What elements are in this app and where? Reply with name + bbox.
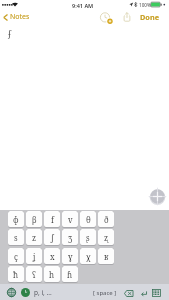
button[interactable]: ħ <box>8 266 24 282</box>
button[interactable]: θ <box>80 211 96 227</box>
staticText: χ <box>86 251 91 262</box>
staticText: ɦ <box>67 269 73 280</box>
staticText: ɣ <box>68 251 73 262</box>
staticText: ʃ <box>51 232 54 243</box>
button[interactable]: Globe <box>7 288 16 297</box>
staticText: 100% <box>139 2 151 8</box>
button[interactable]: β <box>26 211 42 227</box>
staticText: h <box>49 269 55 280</box>
button[interactable]: Language <box>21 288 30 297</box>
button[interactable]: h <box>44 266 60 282</box>
staticText: β <box>32 214 37 225</box>
button[interactable]: ʒ <box>62 229 78 245</box>
button[interactable]: f <box>44 211 60 227</box>
button[interactable]: Share <box>121 11 133 22</box>
staticText: ʐ <box>104 232 109 243</box>
button[interactable]: ʁ <box>98 248 114 264</box>
staticText: Notes <box>10 12 30 22</box>
button[interactable]: ç <box>8 248 24 264</box>
button[interactable]: χ <box>80 248 96 264</box>
button[interactable]: Return <box>141 290 147 297</box>
button[interactable]: ɦ <box>62 266 78 282</box>
staticText: ʂ <box>86 232 90 243</box>
button[interactable]: ɣ <box>62 248 78 264</box>
staticText: [ space ] <box>93 289 117 297</box>
button[interactable]: Backspace <box>124 290 133 297</box>
staticText: ʒ <box>68 232 73 243</box>
staticText: ʄ <box>8 27 11 39</box>
staticText: ʝ <box>33 251 36 262</box>
staticText: ʕ <box>32 269 36 280</box>
button[interactable]: ɸ <box>8 211 24 227</box>
button[interactable]: Switch keyboard <box>152 289 161 297</box>
button[interactable]: ʕ <box>26 266 42 282</box>
button[interactable]: ʐ <box>98 229 114 245</box>
staticText: ɸ <box>13 214 19 225</box>
staticText: z <box>32 232 37 243</box>
button[interactable]: ð <box>98 211 114 227</box>
button[interactable]: ʃ <box>44 229 60 245</box>
staticText: f <box>51 214 54 225</box>
staticText: ħ <box>13 269 19 280</box>
staticText: ʁ <box>104 251 109 262</box>
staticText: p, i, ... <box>34 288 52 297</box>
button[interactable]: z <box>26 229 42 245</box>
button[interactable]: Recently deleted <box>99 11 115 22</box>
staticText: ð <box>104 214 109 225</box>
staticText: x <box>50 251 55 262</box>
button[interactable]: Add note <box>148 187 167 206</box>
button[interactable]: ʂ <box>80 229 96 245</box>
button[interactable]: Notes <box>0 12 33 22</box>
staticText: ç <box>14 251 18 262</box>
button[interactable]: s <box>8 229 24 245</box>
staticText: s <box>14 232 18 243</box>
staticText: 9:41 AM <box>72 2 94 9</box>
staticText: Done <box>140 12 160 22</box>
button[interactable]: v <box>62 211 78 227</box>
button[interactable]: x <box>44 248 60 264</box>
button[interactable]: Done <box>138 12 162 22</box>
button[interactable]: ʝ <box>26 248 42 264</box>
staticText: v <box>68 214 73 225</box>
staticText: θ <box>86 214 91 225</box>
